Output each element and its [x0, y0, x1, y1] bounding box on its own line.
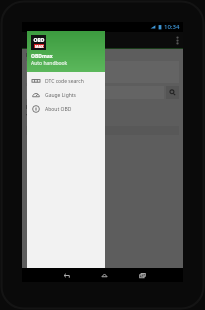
staticText: MAX [35, 44, 44, 48]
staticText: About OBD [45, 106, 72, 113]
staticText: "A" Circuit High [26, 112, 69, 120]
staticText: Fault code [26, 52, 51, 59]
staticText: 10:34 [164, 23, 180, 31]
button[interactable]: Gauge Lights [27, 88, 105, 102]
button[interactable]: More options [171, 32, 183, 49]
button[interactable]: DTC code search [27, 74, 105, 88]
button[interactable]: Recents [134, 268, 150, 282]
button[interactable]: Back [58, 268, 74, 282]
button[interactable] [26, 61, 179, 83]
staticText: Bus Tested: [26, 103, 60, 111]
staticText: DTC code search [45, 78, 84, 85]
button[interactable]: About OBD [27, 102, 105, 116]
staticText: OBDmax [31, 53, 53, 60]
button[interactable]: Search [166, 86, 179, 99]
staticText: Auto handbook [31, 60, 68, 67]
button[interactable]: Home [96, 268, 112, 282]
staticText: OBD [33, 37, 45, 44]
staticText: Gauge Lights [45, 92, 77, 99]
